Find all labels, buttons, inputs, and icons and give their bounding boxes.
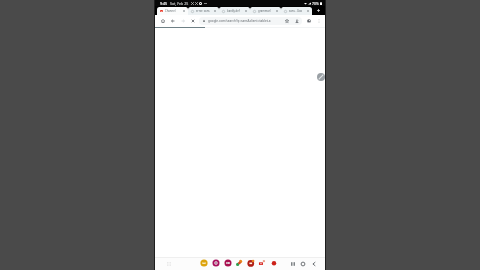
staticText: Sat, Feb 25 [170, 1, 189, 6]
button[interactable]: Home [300, 261, 306, 267]
button[interactable]: App [247, 259, 255, 267]
button[interactable]: Back [170, 18, 176, 24]
button[interactable]: App [270, 259, 278, 267]
button[interactable]: App [258, 259, 266, 267]
button[interactable]: Stop loading [190, 18, 196, 24]
staticText: 9:45 [160, 1, 168, 6]
button[interactable]: Profile [306, 18, 312, 24]
button[interactable]: Back [311, 261, 317, 267]
staticText: 70% [312, 1, 319, 6]
button[interactable]: More options [316, 18, 322, 24]
button[interactable]: All apps [166, 261, 172, 267]
button[interactable]: App [200, 259, 208, 267]
button[interactable]: error: sans [188, 7, 219, 15]
button[interactable]: App [212, 259, 220, 267]
staticText: sans - Goo [289, 9, 307, 13]
button[interactable]: Channel [157, 7, 188, 15]
button[interactable]: Forward [180, 18, 186, 24]
button[interactable]: New tab [312, 7, 324, 16]
staticText: google.com/search?q=sans&client=tablet-a [208, 19, 283, 23]
button[interactable]: bardly.def [219, 7, 250, 15]
staticText: error: sans [196, 9, 214, 13]
button[interactable]: Home [160, 18, 166, 24]
button[interactable]: App [235, 259, 243, 267]
staticText: grammarl [258, 9, 276, 13]
button[interactable]: google.com/search?q=sans&client=tablet-a [199, 17, 302, 25]
button[interactable]: Downloads [294, 18, 300, 24]
button[interactable]: Recent apps [290, 261, 296, 267]
button[interactable]: sans - Goo [281, 7, 312, 15]
staticText: bardly.def [227, 9, 245, 13]
button[interactable]: Bookmark [284, 18, 290, 24]
button[interactable]: App [224, 259, 232, 267]
button[interactable]: grammarl [250, 7, 281, 15]
staticText: Channel [165, 9, 183, 13]
